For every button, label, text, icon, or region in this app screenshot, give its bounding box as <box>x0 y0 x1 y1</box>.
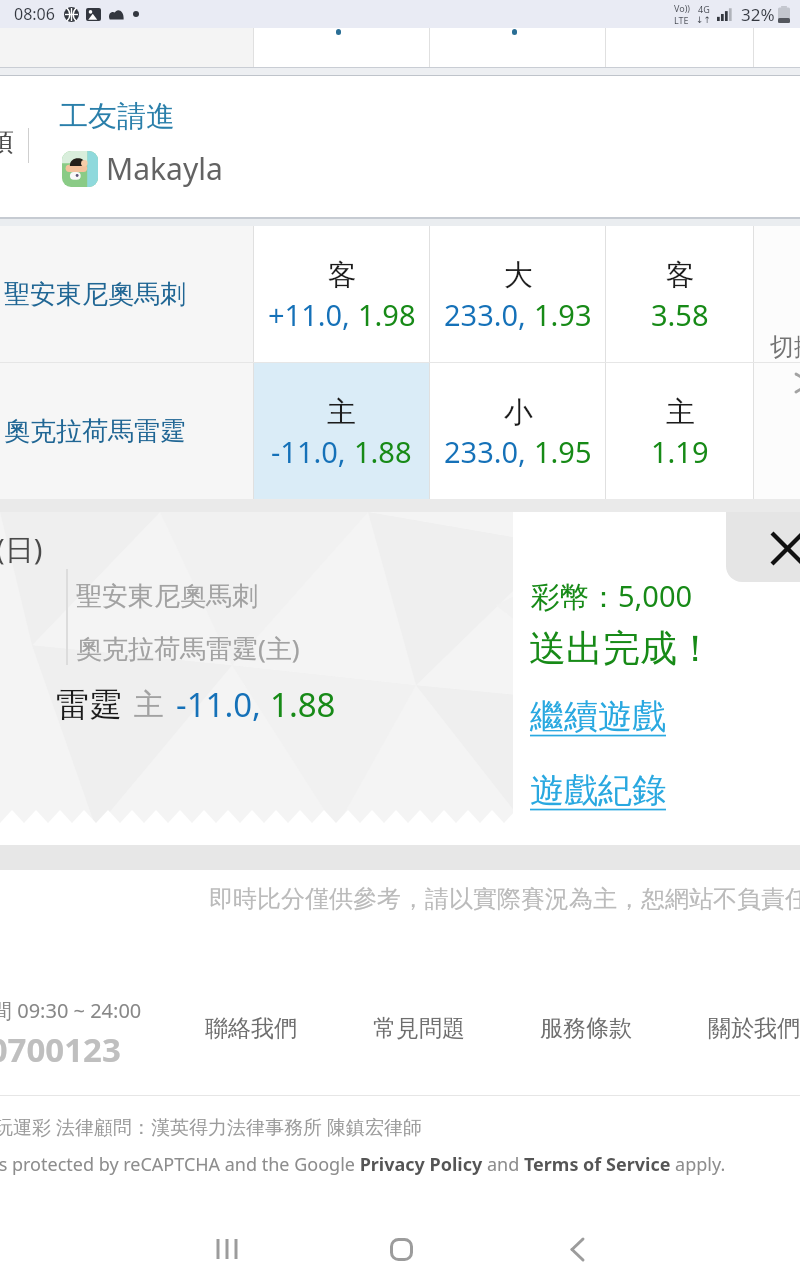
staticText: 233.0, <box>444 432 534 471</box>
staticText: 奧克拉荷馬雷霆 <box>4 415 186 448</box>
staticText: is protected by reCAPTCHA and the Google… <box>0 1152 794 1177</box>
button[interactable]: 服務條款 <box>540 1014 632 1043</box>
staticText: 1.95 <box>534 432 592 471</box>
button[interactable]: 切換 <box>770 332 800 394</box>
button[interactable]: 主 <box>254 363 429 499</box>
button[interactable]: Makayla <box>62 148 223 189</box>
button[interactable]: 主 <box>606 363 753 499</box>
button[interactable]: Recents <box>190 1218 262 1280</box>
staticText: +11.0, <box>268 295 358 334</box>
staticText: 送出完成！ <box>529 625 714 672</box>
button[interactable]: 遊戲紀錄 <box>530 769 666 812</box>
button[interactable]: 繼續遊戲 <box>530 695 666 738</box>
staticText: 1.88 <box>354 432 412 471</box>
staticText: 聖安東尼奧馬刺 <box>4 278 186 311</box>
staticText: 切換 <box>770 332 800 362</box>
staticText: 彩幣：5,000 <box>531 576 693 616</box>
staticText: 233.0, <box>444 295 534 334</box>
button[interactable]: 小 <box>430 363 605 499</box>
staticText: 聖安東尼奧馬刺 <box>76 580 258 613</box>
staticText: 08:06 <box>14 3 55 25</box>
staticText: 雷霆 <box>56 684 122 726</box>
button[interactable]: Close <box>726 512 800 582</box>
staticText: -11.0, <box>176 682 261 727</box>
staticText: 0800700123 <box>0 1027 121 1072</box>
staticText: 1.19 <box>651 432 709 471</box>
staticText: 奧克拉荷馬雷霆(主) <box>76 630 300 666</box>
button[interactable]: 大 <box>430 226 605 362</box>
button[interactable]: 常見問題 <box>373 1014 465 1043</box>
staticText: 服務時間 09:30 ~ 24:00 <box>0 997 142 1024</box>
staticText: 主 <box>327 394 356 431</box>
staticText: 小 <box>504 394 533 431</box>
staticText: Makayla <box>106 148 223 189</box>
button[interactable]: 客 <box>254 226 429 362</box>
staticText: 項 <box>0 126 14 159</box>
staticText: 客 <box>328 257 357 294</box>
staticText: ↓↑ <box>696 15 712 25</box>
button[interactable]: 工友請進 <box>59 98 175 135</box>
button[interactable]: Home <box>365 1218 437 1280</box>
button[interactable]: 聯絡我們 <box>205 1014 297 1043</box>
staticText: -11.0, <box>271 432 354 471</box>
button[interactable]: Back <box>541 1218 613 1280</box>
staticText: (日) <box>0 529 43 569</box>
staticText: LTE <box>674 14 689 26</box>
staticText: 1.98 <box>358 295 416 334</box>
staticText: 4G <box>698 3 710 15</box>
staticText: 1.93 <box>534 295 592 334</box>
staticText: 即時比分僅供參考，請以實際賽況為主，恕網站不負責任 <box>209 884 800 914</box>
button[interactable]: 關於我們 <box>708 1014 800 1043</box>
staticText: 1.88 <box>270 682 336 727</box>
staticText: 32% <box>741 3 775 26</box>
staticText: 3.58 <box>651 295 709 334</box>
staticText: 主 <box>666 394 695 431</box>
staticText: Vo)) <box>674 2 691 14</box>
staticText: 主 <box>134 686 164 724</box>
staticText: 客 <box>666 257 695 294</box>
button[interactable]: 客 <box>606 226 753 362</box>
staticText: 玩運彩 法律顧問：漢英得力法律事務所 陳鎮宏律師 <box>0 1114 494 1140</box>
staticText: 大 <box>504 257 533 294</box>
